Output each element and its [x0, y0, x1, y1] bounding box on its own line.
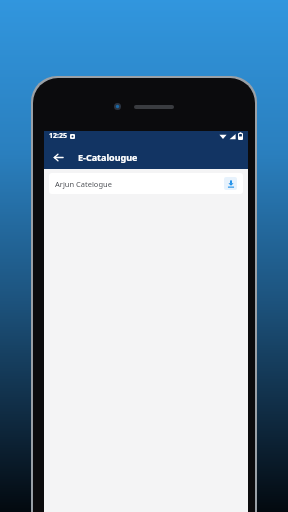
staticText: Arjun Catelogue	[55, 179, 112, 189]
staticText: E-Catalougue	[78, 151, 138, 163]
button[interactable]: Back	[48, 147, 68, 167]
button[interactable]: Download	[224, 177, 237, 190]
button[interactable]: Arjun Catelogue	[49, 173, 243, 194]
staticText: 12:25	[49, 131, 67, 141]
